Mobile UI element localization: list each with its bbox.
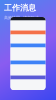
- staticText: 高效协同 · 消息触达: [4, 15, 39, 20]
- staticText: 工作消息: [4, 3, 36, 13]
